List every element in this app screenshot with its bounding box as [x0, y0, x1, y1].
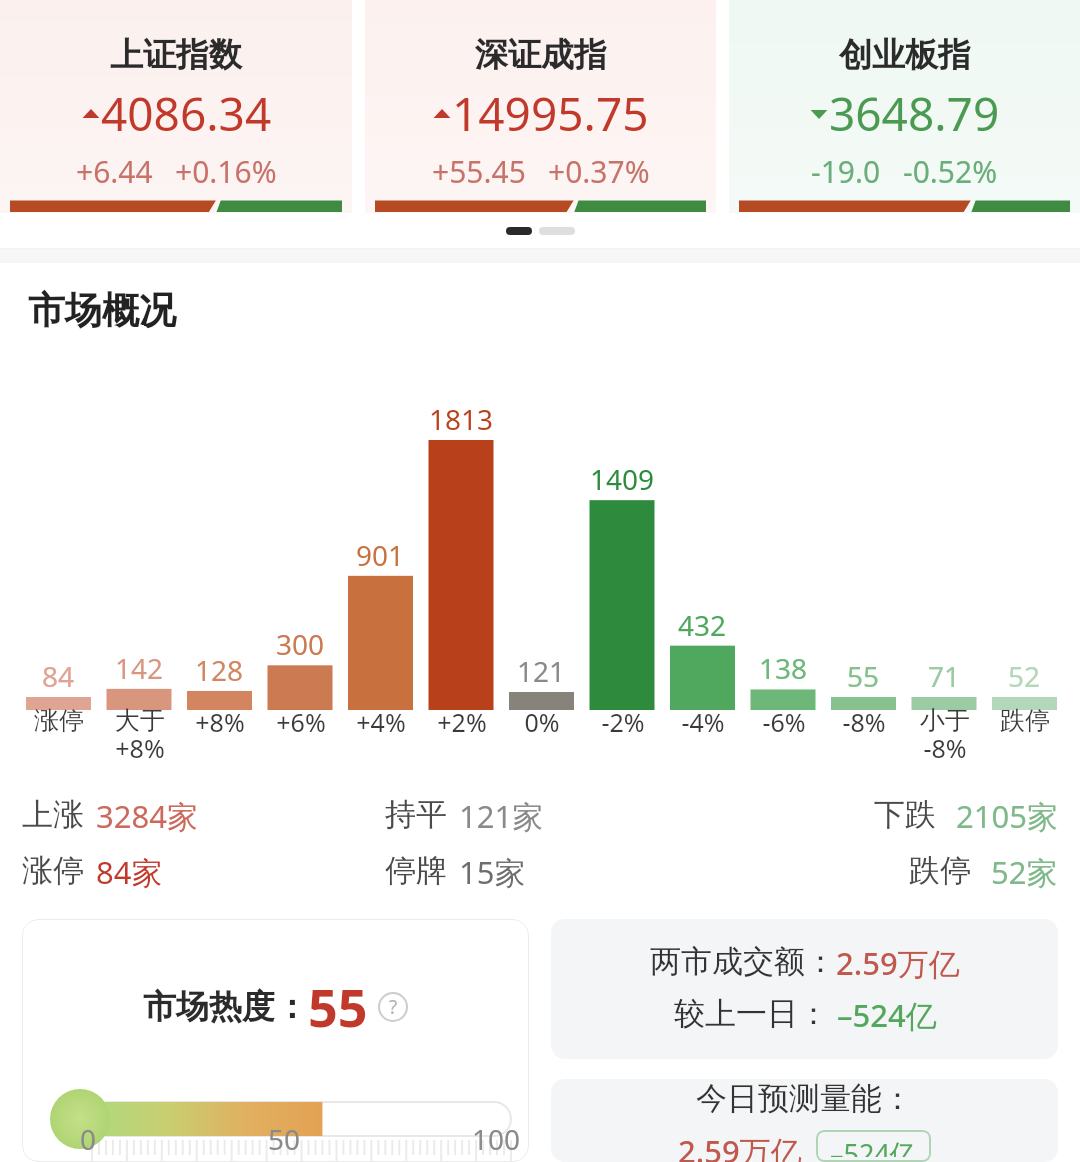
staticText: +0.37% [548, 151, 650, 192]
staticText: +4% [356, 705, 406, 739]
button[interactable]: 创业板指 [729, 0, 1080, 213]
button[interactable]: 市场热度： [22, 919, 529, 1162]
button[interactable]: 上证指数 [0, 0, 352, 213]
staticText: 0 [80, 1120, 97, 1158]
staticText: 1409 [590, 460, 655, 498]
staticText: ? [389, 994, 398, 1020]
staticText: 1813 [429, 400, 494, 438]
staticText: 121家 [459, 795, 544, 837]
staticText: 涨停 [22, 851, 84, 890]
staticText: 138 [759, 649, 808, 687]
staticText: 上证指数 [110, 34, 242, 76]
staticText: 0% [524, 705, 560, 739]
staticText: 4086.34 [101, 82, 272, 145]
staticText: –524亿 [830, 1135, 917, 1157]
staticText: 创业板指 [839, 34, 971, 76]
staticText: 跌停 [1000, 705, 1050, 736]
staticText: 3284家 [96, 795, 198, 837]
staticText: -19.0 [811, 151, 881, 192]
staticText: +55.45 [432, 151, 526, 192]
staticText: 84 [42, 657, 75, 695]
staticText: 901 [356, 536, 405, 574]
staticText: 55 [308, 971, 368, 1042]
button[interactable]: 今日预测量能： [551, 1079, 1058, 1162]
staticText: 停牌 [385, 851, 447, 890]
staticText: 较上一日： [674, 994, 829, 1033]
staticText: -0.52% [903, 151, 998, 192]
staticText: 100 [472, 1120, 521, 1158]
staticText: 深证成指 [475, 34, 607, 76]
staticText: 128 [195, 651, 244, 689]
staticText: 50 [268, 1120, 301, 1158]
button[interactable]: 两市成交额： [551, 919, 1058, 1059]
staticText: 71 [928, 657, 961, 695]
staticText: +6.44 [76, 151, 153, 192]
staticText: 3648.79 [829, 82, 1000, 145]
staticText: 142 [115, 649, 164, 687]
staticText: 14995.75 [452, 82, 649, 145]
staticText: 小于 -8% [920, 705, 970, 765]
staticText: 跌停 [909, 851, 971, 890]
staticText: 55 [847, 657, 880, 695]
staticText: 52 [1008, 657, 1041, 695]
button[interactable]: 深证成指 [365, 0, 716, 213]
staticText: 涨停 [34, 705, 84, 736]
staticText: 今日预测量能： [696, 1079, 913, 1118]
staticText: +8% [195, 705, 245, 739]
staticText: 下跌 [874, 795, 936, 834]
staticText: 15家 [459, 851, 526, 893]
staticText: 2105家 [956, 795, 1058, 837]
staticText: +0.16% [175, 151, 277, 192]
staticText: 市场概况 [28, 287, 176, 334]
staticText: 2.59万亿 [678, 1130, 802, 1162]
staticText: -8% [842, 705, 886, 739]
staticText: 持平 [385, 795, 447, 834]
staticText: 两市成交额： [650, 942, 836, 981]
staticText: -2% [601, 705, 645, 739]
staticText: 市场热度： [143, 986, 308, 1028]
staticText: 上涨 [22, 795, 84, 834]
button[interactable]: Help [378, 992, 408, 1022]
staticText: 大于 +8% [115, 705, 165, 765]
staticText: +2% [437, 705, 487, 739]
staticText: 2.59万亿 [836, 942, 960, 984]
staticText: 121 [517, 652, 566, 690]
staticText: 432 [678, 606, 727, 644]
staticText: +6% [276, 705, 326, 739]
staticText: 84家 [96, 851, 163, 893]
staticText: 52家 [991, 851, 1058, 893]
staticText: -6% [762, 705, 806, 739]
staticText: –524亿 [837, 994, 937, 1036]
staticText: 300 [276, 625, 325, 663]
staticText: -4% [681, 705, 725, 739]
